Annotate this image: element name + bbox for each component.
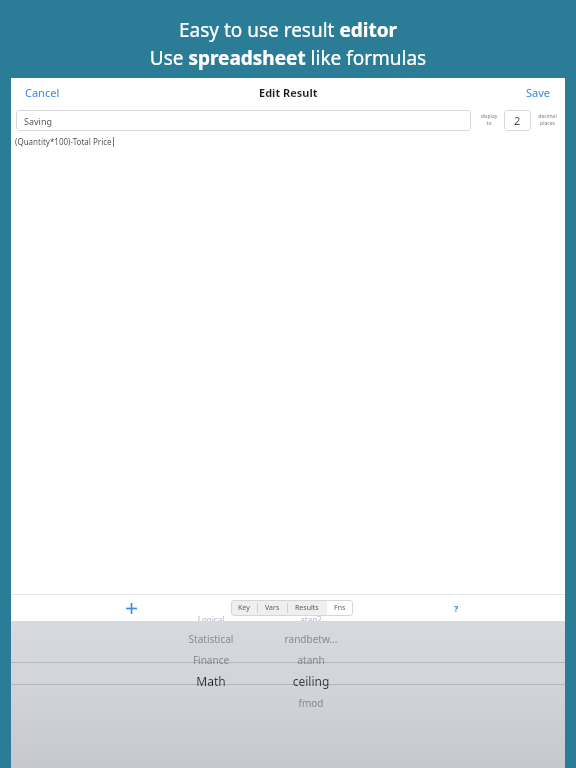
button[interactable]: Save — [521, 80, 556, 105]
staticText: Logical — [166, 614, 256, 621]
button[interactable]: Saving — [16, 110, 471, 131]
button[interactable]: Results — [288, 600, 326, 616]
staticText: Statistical — [166, 632, 256, 646]
staticText: Edit Result — [259, 85, 318, 100]
staticText: display to — [478, 113, 500, 127]
staticText: atan2 — [266, 614, 356, 621]
staticText: ceiling — [266, 673, 356, 689]
button[interactable]: Help — [445, 597, 467, 619]
button[interactable]: fmod — [11, 692, 565, 713]
button[interactable]: Math — [11, 670, 565, 692]
staticText: ? — [454, 602, 459, 614]
staticText: Key — [238, 603, 250, 613]
staticText: 2 — [514, 113, 521, 128]
staticText: Math — [166, 673, 256, 689]
staticText: fmod — [266, 696, 356, 710]
staticText: Finance — [166, 653, 256, 667]
staticText: randbetw... — [266, 632, 356, 646]
staticText: (Quantity*100)-Total Price — [15, 136, 112, 147]
staticText: Vars — [265, 603, 280, 613]
staticText: atanh — [266, 653, 356, 667]
staticText: Easy to use result editor — [0, 17, 576, 43]
button[interactable]: Key — [231, 600, 257, 616]
button[interactable]: Fns — [327, 600, 353, 616]
staticText: Saving — [24, 115, 52, 127]
staticText: Fns — [334, 603, 346, 613]
staticText: Save — [526, 85, 551, 100]
button[interactable]: Add — [119, 596, 143, 620]
staticText: Use spreadsheet like formulas — [0, 45, 576, 71]
button[interactable]: Finance — [11, 649, 565, 670]
button[interactable]: (Quantity*100)-Total Price — [11, 133, 565, 594]
button[interactable]: Statistical — [11, 628, 565, 649]
staticText: decimal places — [535, 113, 560, 127]
button[interactable]: 2 — [504, 110, 531, 131]
staticText: Cancel — [25, 85, 60, 100]
button[interactable]: Vars — [258, 600, 287, 616]
button[interactable]: Cancel — [20, 80, 65, 105]
staticText: Results — [295, 603, 319, 613]
